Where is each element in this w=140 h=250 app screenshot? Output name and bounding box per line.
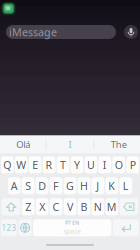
button[interactable]: S	[22, 177, 34, 194]
button[interactable]	[2, 198, 21, 215]
button[interactable]: B	[78, 198, 90, 215]
button[interactable]: J	[91, 177, 104, 194]
button[interactable]: P	[126, 156, 139, 173]
button[interactable]: iMessage	[6, 25, 116, 39]
staticText: I	[68, 138, 71, 150]
staticText: W	[16, 158, 26, 172]
staticText: I	[103, 158, 107, 172]
staticText: iMessage	[9, 25, 57, 39]
button[interactable]: M	[105, 198, 118, 215]
button[interactable]: N	[91, 198, 104, 215]
button[interactable]: E	[29, 156, 41, 173]
button[interactable]: Y	[71, 156, 83, 173]
staticText: Z	[25, 200, 31, 214]
staticText: U	[87, 158, 95, 172]
staticText: V	[67, 200, 73, 214]
staticText: S	[25, 179, 31, 193]
staticText: X	[39, 200, 45, 214]
staticText: G	[66, 179, 74, 193]
button[interactable]: H	[78, 177, 90, 194]
staticText: M	[107, 200, 117, 214]
button[interactable]	[18, 219, 32, 236]
button[interactable]: Z	[22, 198, 34, 215]
button[interactable]: K	[105, 177, 118, 194]
staticText: P	[130, 158, 136, 172]
staticText: N	[94, 200, 102, 214]
staticText: Olá	[16, 138, 30, 150]
staticText: B	[80, 200, 87, 214]
button[interactable]: Dictate	[124, 25, 138, 39]
button[interactable]: A	[8, 177, 21, 194]
staticText: Y	[74, 158, 80, 172]
staticText: H	[80, 179, 88, 193]
staticText: C	[53, 200, 60, 214]
button[interactable]: W	[15, 156, 27, 173]
button[interactable]: I	[98, 156, 111, 173]
button[interactable]: D	[36, 177, 48, 194]
staticText: T	[60, 158, 66, 172]
staticText: The	[111, 138, 127, 150]
button[interactable]: C	[50, 198, 62, 215]
staticText: D	[38, 179, 46, 193]
button[interactable]: The	[94, 135, 139, 153]
button[interactable]: U	[85, 156, 97, 173]
staticText: Q	[3, 158, 11, 172]
button[interactable]: O	[112, 156, 125, 173]
staticText: 123	[2, 222, 17, 233]
staticText: R	[46, 158, 53, 172]
staticText: space	[63, 227, 81, 236]
button[interactable]: X	[36, 198, 48, 215]
staticText: J	[96, 179, 99, 193]
button[interactable]: Olá	[1, 135, 46, 153]
button[interactable]: PT EN	[33, 219, 111, 236]
staticText: K	[108, 179, 115, 193]
button[interactable]: I	[46, 135, 93, 153]
staticText: PT EN	[65, 219, 79, 226]
button[interactable]: R	[43, 156, 55, 173]
button[interactable]: T	[57, 156, 69, 173]
button[interactable]: L	[119, 177, 132, 194]
staticText: A	[11, 179, 18, 193]
staticText: F	[53, 179, 59, 193]
staticText: O	[115, 158, 123, 172]
staticText: E	[32, 158, 38, 172]
staticText: L	[123, 179, 129, 193]
button[interactable]: F	[50, 177, 62, 194]
button[interactable]	[119, 198, 138, 215]
button[interactable]: 123	[1, 219, 17, 236]
button[interactable]: G	[64, 177, 76, 194]
button[interactable]: V	[64, 198, 76, 215]
button[interactable]	[113, 219, 139, 236]
button[interactable]: Q	[1, 156, 14, 173]
